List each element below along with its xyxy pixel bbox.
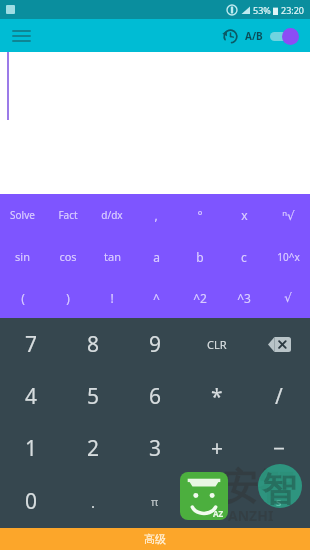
staticText: sin xyxy=(15,249,30,264)
staticText: 4 xyxy=(25,382,38,411)
button[interactable]: 6 xyxy=(124,370,186,422)
button[interactable]: π xyxy=(124,475,186,528)
button[interactable]: 1 xyxy=(0,422,62,475)
button[interactable]: ( xyxy=(0,277,45,318)
button[interactable]: 高级 xyxy=(0,528,310,550)
staticText: s xyxy=(276,494,282,509)
button[interactable]: 10^x xyxy=(266,236,310,277)
staticText: ° xyxy=(197,207,203,223)
staticText: tan xyxy=(104,249,121,264)
button[interactable]: 3 xyxy=(124,422,186,475)
staticText: ( xyxy=(21,290,25,306)
staticText: AZ xyxy=(213,508,224,519)
button[interactable]: s xyxy=(248,475,310,528)
button[interactable]: a xyxy=(134,236,178,277)
button[interactable]: d/dx xyxy=(90,194,134,236)
staticText: 0 xyxy=(25,487,38,516)
button[interactable]: 0 xyxy=(0,475,62,528)
staticText: 7 xyxy=(25,330,38,359)
button[interactable]: CLR xyxy=(186,318,248,370)
staticText: 2 xyxy=(87,434,100,463)
staticText: 9 xyxy=(149,330,162,359)
button[interactable]: − xyxy=(248,422,310,475)
staticText: x xyxy=(241,207,248,223)
staticText: c xyxy=(241,249,247,265)
button[interactable]: Backspace xyxy=(248,318,310,370)
button[interactable]: 7 xyxy=(0,318,62,370)
button[interactable]: x xyxy=(222,194,266,236)
button[interactable]: Fact xyxy=(45,194,90,236)
staticText: Solve xyxy=(10,208,35,222)
staticText: A/B xyxy=(245,29,263,43)
staticText: . xyxy=(91,492,96,512)
staticText: 8 xyxy=(87,330,100,359)
staticText: ^2 xyxy=(193,290,207,306)
button[interactable]: ° xyxy=(178,194,222,236)
staticText: ^ xyxy=(153,290,160,306)
button[interactable]: ^2 xyxy=(178,277,222,318)
button[interactable]: ! xyxy=(90,277,134,318)
button[interactable]: 5 xyxy=(62,370,124,422)
button[interactable]: ⁿ√ xyxy=(266,194,310,236)
button[interactable]: c xyxy=(222,236,266,277)
staticText: cos xyxy=(59,249,77,264)
staticText: CLR xyxy=(207,337,227,352)
staticText: 10^x xyxy=(277,250,300,264)
button[interactable]: Toggle A B mode xyxy=(268,25,302,47)
staticText: 6 xyxy=(149,382,162,411)
button[interactable]: cos xyxy=(45,236,90,277)
staticText: d/dx xyxy=(101,208,123,222)
staticText: 5 xyxy=(87,382,100,411)
staticText: 1 xyxy=(25,434,38,463)
button[interactable]: * xyxy=(186,370,248,422)
button[interactable]: e xyxy=(186,475,248,528)
staticText: e xyxy=(214,494,221,509)
button[interactable]: 9 xyxy=(124,318,186,370)
staticText: Fact xyxy=(58,208,78,222)
staticText: b xyxy=(196,249,204,265)
staticText: * xyxy=(211,382,223,411)
button[interactable]: ) xyxy=(45,277,90,318)
staticText: − xyxy=(273,434,286,463)
button[interactable]: 2 xyxy=(62,422,124,475)
staticText: √ xyxy=(284,291,292,305)
staticText: 53% xyxy=(253,4,271,16)
button[interactable]: ^3 xyxy=(222,277,266,318)
staticText: 安智 xyxy=(222,464,294,509)
button[interactable]: ^ xyxy=(134,277,178,318)
staticText: , xyxy=(154,207,158,223)
button[interactable]: b xyxy=(178,236,222,277)
staticText: ! xyxy=(110,290,114,306)
button[interactable]: / xyxy=(248,370,310,422)
button[interactable]: 4 xyxy=(0,370,62,422)
staticText: ⁿ√ xyxy=(282,207,295,223)
staticText: 智 xyxy=(262,468,296,511)
button[interactable]: √ xyxy=(266,277,310,318)
staticText: / xyxy=(275,382,283,411)
staticText: a xyxy=(153,249,160,265)
button[interactable]: tan xyxy=(90,236,134,277)
staticText: 23:20 xyxy=(281,4,305,16)
button[interactable]: , xyxy=(134,194,178,236)
staticText: π xyxy=(151,494,159,509)
staticText: ANZHI xyxy=(228,506,274,525)
staticText: ^3 xyxy=(237,290,251,306)
staticText: 3 xyxy=(149,434,162,463)
staticText: + xyxy=(211,434,224,463)
button[interactable]: . xyxy=(62,475,124,528)
button[interactable]: sin xyxy=(0,236,45,277)
staticText: ) xyxy=(66,290,70,306)
button[interactable]: 8 xyxy=(62,318,124,370)
button[interactable]: + xyxy=(186,422,248,475)
button[interactable]: Solve xyxy=(0,194,45,236)
button[interactable]: Menu xyxy=(8,23,34,49)
staticText: 高级 xyxy=(144,532,166,546)
button[interactable]: History xyxy=(219,25,241,47)
